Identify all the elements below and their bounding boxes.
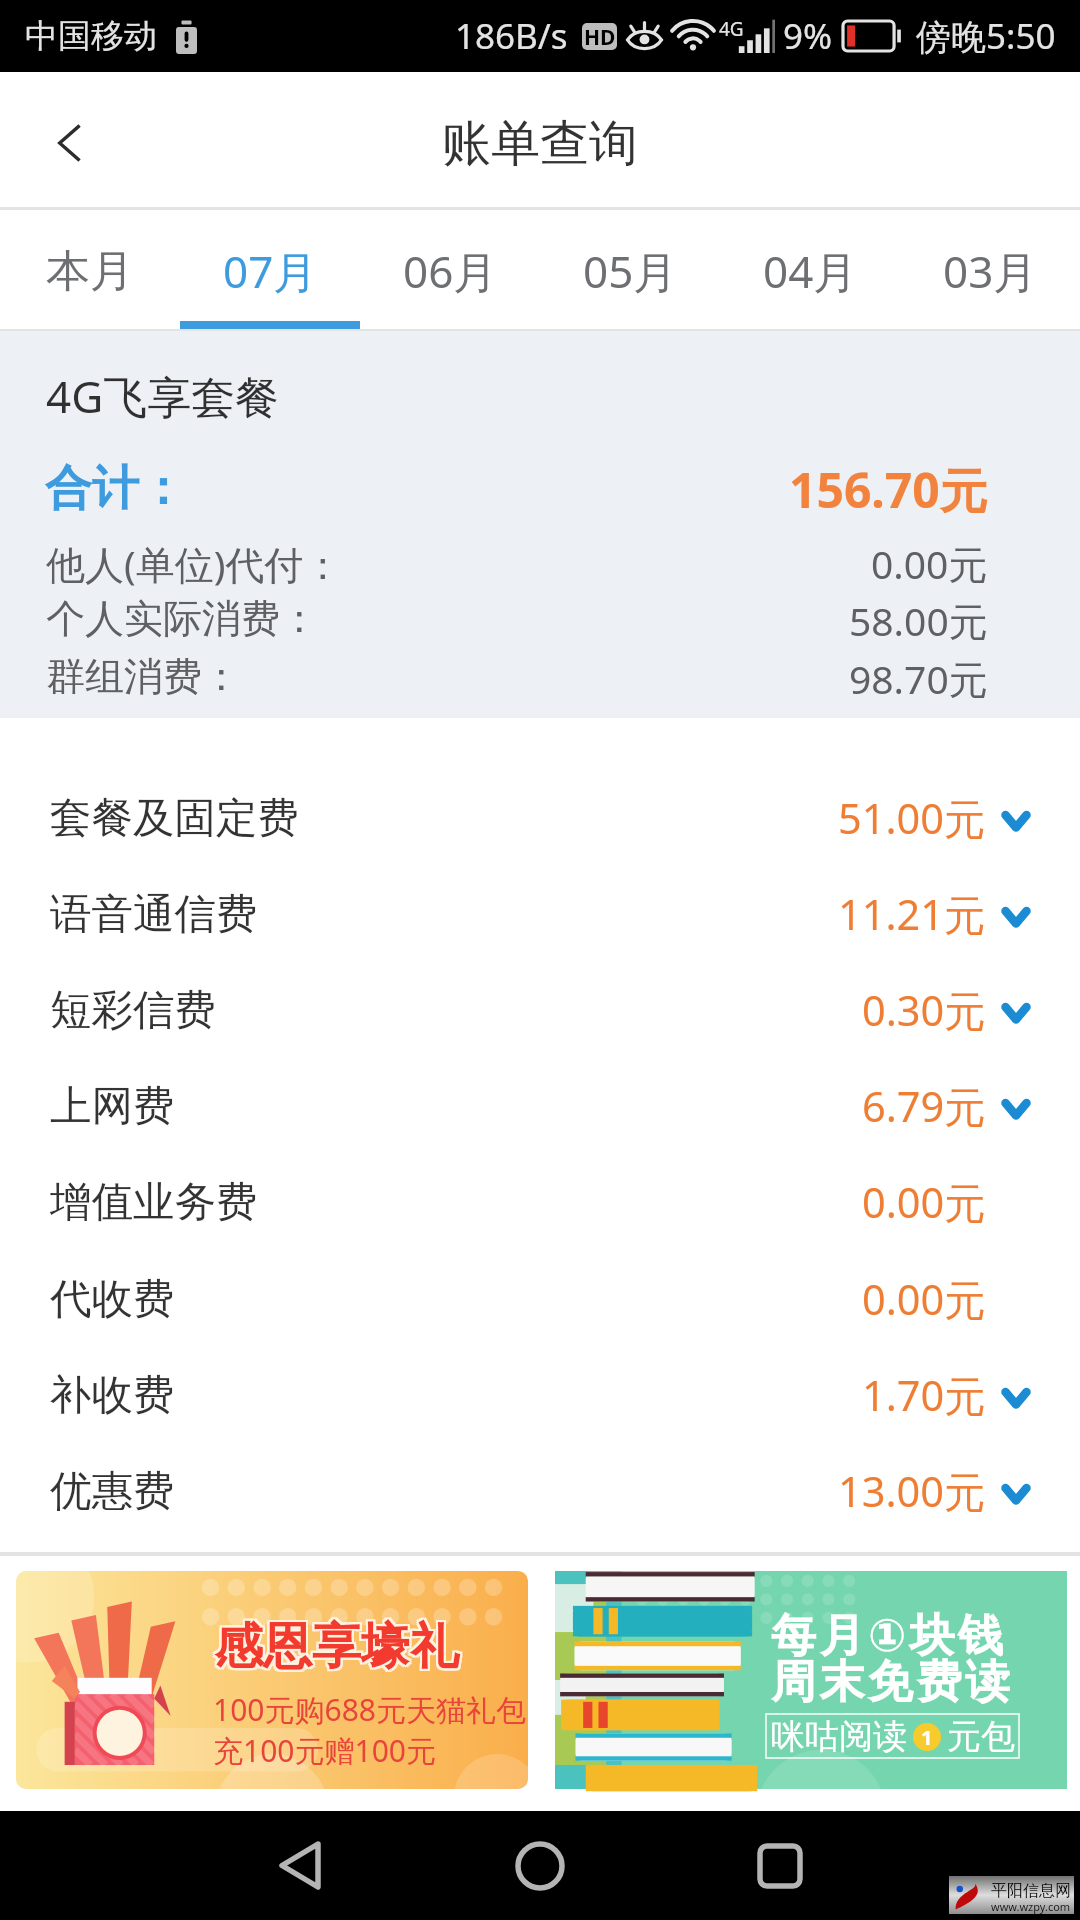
- staticText: 上网费: [50, 1080, 175, 1132]
- button[interactable]: 补收费: [0, 1350, 1080, 1446]
- staticText: 感恩享壕礼: [214, 1618, 459, 1680]
- button[interactable]: 05月: [540, 210, 720, 330]
- button[interactable]: 增值业务费: [0, 1157, 1080, 1253]
- staticText: 感恩享壕礼: [212, 1618, 457, 1680]
- staticText: 07月: [223, 241, 318, 301]
- staticText: 感恩享壕礼: [214, 1616, 459, 1678]
- staticText: 04月: [763, 241, 858, 301]
- button[interactable]: 本月: [0, 210, 180, 330]
- staticText: HD: [584, 23, 616, 50]
- button[interactable]: 套餐及固定费: [0, 773, 1080, 869]
- staticText: 充100元赠100元: [213, 1730, 436, 1771]
- staticText: 咪咕阅读: [771, 1715, 907, 1758]
- button[interactable]: 优惠费: [0, 1446, 1080, 1542]
- staticText: 傍晚5:50: [916, 12, 1056, 60]
- staticText: 98.70元: [849, 652, 988, 705]
- staticText: 个人实际消费：: [46, 594, 319, 643]
- staticText: 100元购688元天猫礼包: [213, 1689, 526, 1730]
- staticText: 每月①块钱: [771, 1608, 1007, 1665]
- staticText: 感恩享壕礼: [216, 1618, 461, 1680]
- staticText: 1.70元: [862, 1367, 986, 1424]
- button[interactable]: 语音通信费: [0, 869, 1080, 965]
- staticText: 0.00元: [862, 1271, 986, 1328]
- button[interactable]: 每月1块钱周末免费读 promotion banner: [555, 1571, 1067, 1789]
- staticText: 平阳信息网: [991, 1881, 1071, 1901]
- staticText: 156.70元: [789, 457, 988, 523]
- staticText: 51.00元: [838, 790, 986, 847]
- button[interactable]: 07月: [180, 210, 360, 330]
- staticText: 9%: [783, 12, 833, 60]
- staticText: 补收费: [50, 1369, 175, 1421]
- staticText: 增值业务费: [50, 1176, 258, 1228]
- staticText: 群组消费：: [46, 652, 241, 701]
- staticText: 0.00元: [871, 537, 988, 590]
- staticText: 186B/s: [455, 12, 568, 60]
- staticText: 06月: [403, 241, 498, 301]
- button[interactable]: 短彩信费: [0, 965, 1080, 1061]
- button[interactable]: Back: [0, 72, 138, 209]
- staticText: 4G: [719, 16, 744, 42]
- staticText: 代收费: [50, 1273, 175, 1325]
- button[interactable]: Home: [480, 1811, 600, 1920]
- button[interactable]: 06月: [360, 210, 540, 330]
- staticText: 4G飞享套餐: [46, 366, 280, 426]
- staticText: www.wzpy.com: [991, 1899, 1071, 1914]
- button[interactable]: Recent apps: [720, 1811, 840, 1920]
- staticText: 他人(单位)代付：: [46, 537, 343, 590]
- staticText: 感恩享壕礼: [212, 1616, 457, 1678]
- staticText: 语音通信费: [50, 888, 258, 940]
- staticText: 感恩享壕礼: [214, 1614, 459, 1676]
- staticText: 1: [921, 1724, 933, 1751]
- staticText: 套餐及固定费: [50, 792, 299, 844]
- button[interactable]: 04月: [720, 210, 900, 330]
- staticText: 03月: [943, 241, 1038, 301]
- staticText: 感恩享壕礼: [212, 1614, 457, 1676]
- staticText: 周末免费读: [771, 1654, 1014, 1711]
- staticText: 感恩享壕礼: [216, 1614, 461, 1676]
- staticText: 05月: [583, 241, 678, 301]
- button[interactable]: 上网费: [0, 1061, 1080, 1157]
- button[interactable]: 代收费: [0, 1254, 1080, 1350]
- staticText: 11.21元: [838, 886, 986, 943]
- staticText: 58.00元: [849, 594, 988, 647]
- button[interactable]: 03月: [900, 210, 1080, 330]
- staticText: 短彩信费: [50, 984, 216, 1036]
- staticText: 合计：: [45, 459, 186, 518]
- staticText: 账单查询: [442, 113, 638, 175]
- button[interactable]: Back: [240, 1811, 360, 1920]
- staticText: 优惠费: [50, 1465, 175, 1517]
- staticText: 中国移动: [25, 15, 157, 57]
- staticText: 13.00元: [838, 1463, 986, 1520]
- staticText: 感恩享壕礼: [216, 1616, 461, 1678]
- staticText: 6.79元: [862, 1078, 986, 1135]
- staticText: 元包: [947, 1715, 1015, 1758]
- button[interactable]: 感恩享壕礼 promotion banner: [16, 1571, 528, 1789]
- staticText: 0.30元: [862, 982, 986, 1039]
- staticText: 本月: [46, 244, 134, 299]
- staticText: 0.00元: [862, 1174, 986, 1231]
